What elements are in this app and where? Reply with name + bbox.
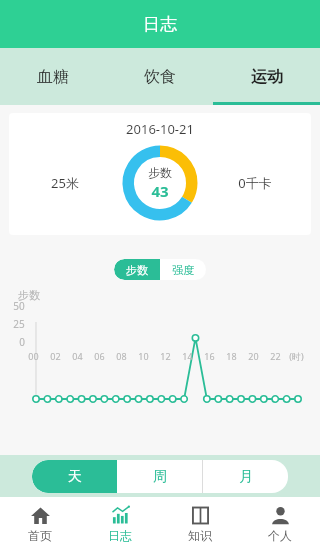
staticText: 18	[226, 350, 237, 362]
staticText: 日志	[143, 14, 177, 35]
staticText: 天	[68, 468, 82, 486]
staticText: 25	[13, 317, 25, 331]
staticText: 步数	[126, 263, 148, 277]
staticText: 16	[204, 350, 215, 362]
staticText: 50	[13, 299, 25, 313]
staticText: 43	[151, 181, 169, 201]
button[interactable]: 饮食	[106, 48, 213, 105]
button[interactable]: 强度	[160, 259, 206, 280]
staticText: 步数	[148, 165, 172, 180]
staticText: 月	[239, 468, 253, 486]
button[interactable]: 知识	[160, 497, 240, 550]
staticText: 00	[28, 350, 39, 362]
staticText: 周	[153, 468, 167, 486]
staticText: 25米	[51, 174, 79, 192]
button[interactable]: 血糖	[0, 48, 106, 105]
staticText: 0千卡	[238, 174, 272, 192]
button[interactable]: 日志	[80, 497, 160, 550]
button[interactable]: 运动	[213, 48, 320, 105]
staticText: 日志	[108, 528, 132, 543]
staticText: 强度	[172, 263, 194, 277]
staticText: 14	[182, 350, 193, 362]
staticText: 步数	[18, 288, 40, 302]
button[interactable]: 步数	[114, 259, 160, 280]
staticText: 20	[248, 350, 259, 362]
staticText: 10	[138, 350, 149, 362]
button[interactable]: 2016-10-21	[9, 113, 311, 235]
staticText: 12	[160, 350, 171, 362]
staticText: 个人	[268, 528, 292, 543]
staticText: 08	[116, 350, 127, 362]
staticText: 饮食	[144, 67, 176, 87]
button[interactable]: 天	[32, 460, 117, 493]
staticText: 血糖	[37, 67, 69, 87]
staticText: 知识	[188, 528, 212, 543]
button[interactable]: 个人	[240, 497, 320, 550]
staticText: 02	[50, 350, 61, 362]
staticText: 首页	[28, 528, 52, 543]
staticText: 0	[19, 335, 25, 349]
staticText: 04	[72, 350, 83, 362]
staticText: 2016-10-21	[126, 120, 194, 138]
staticText: 运动	[251, 67, 283, 87]
staticText: 22	[270, 350, 281, 362]
staticText: 06	[94, 350, 105, 362]
button[interactable]: 首页	[0, 497, 80, 550]
button[interactable]: 月	[203, 460, 288, 493]
staticText: (时)	[289, 350, 304, 362]
button[interactable]: 周	[117, 460, 202, 493]
